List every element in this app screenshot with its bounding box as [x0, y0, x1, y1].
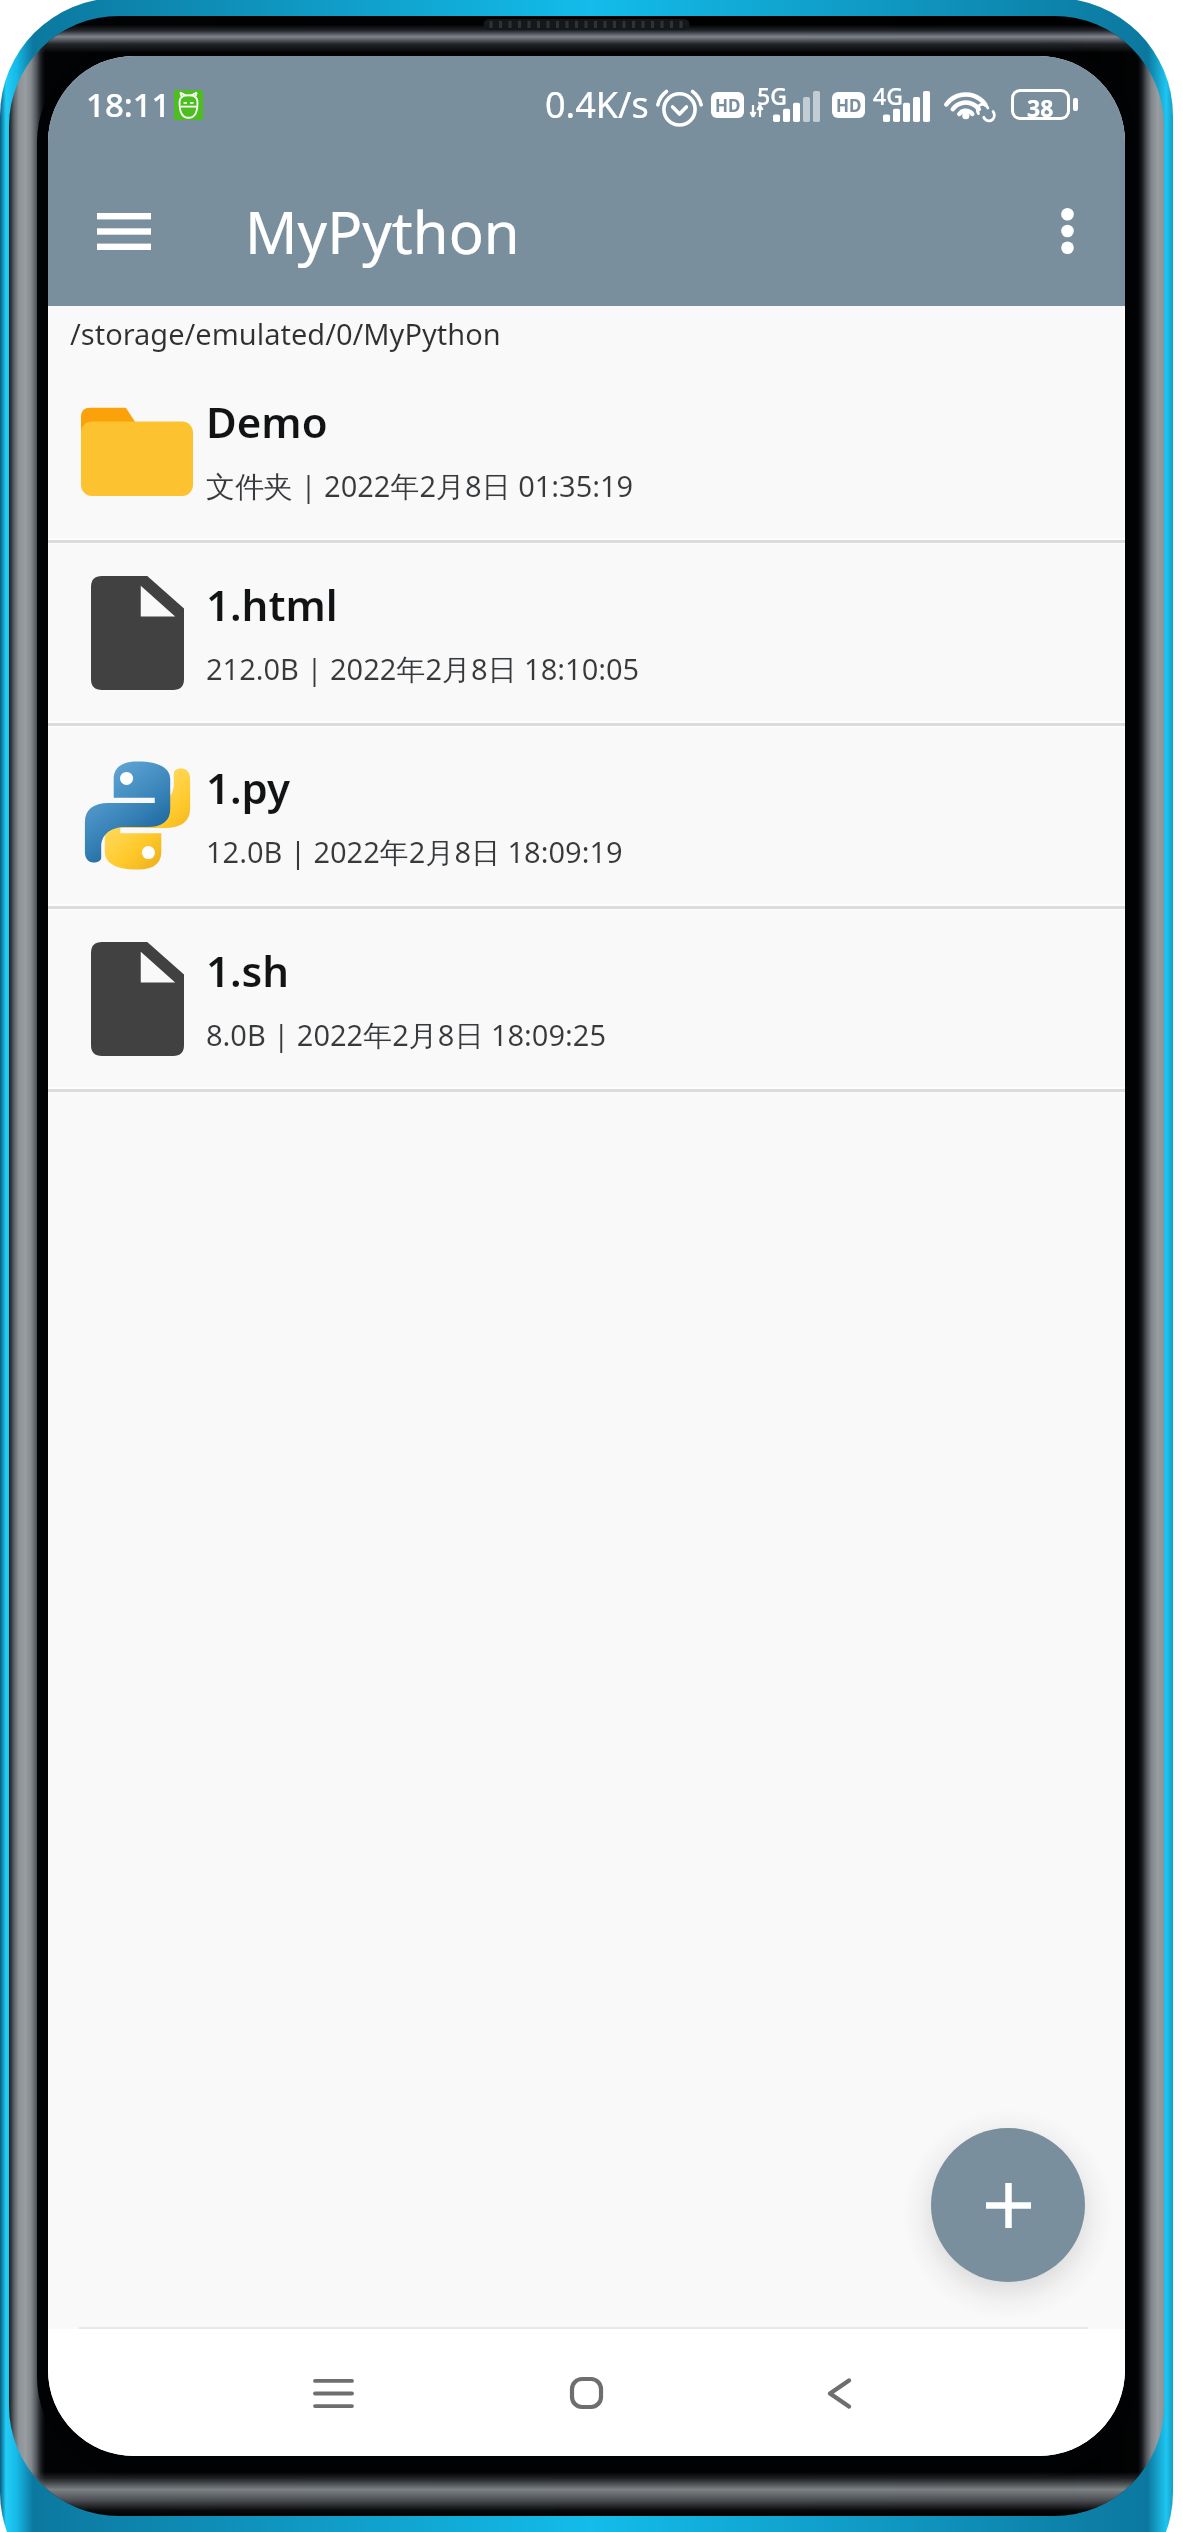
staticText: 1.sh: [206, 942, 290, 999]
button[interactable]: More options: [1013, 177, 1121, 285]
staticText: 212.0B | 2022年2月8日 18:10:05: [206, 649, 640, 689]
button[interactable]: Add: [931, 2128, 1085, 2282]
staticText: 文件夹 | 2022年2月8日 01:35:19: [206, 466, 634, 506]
staticText: 4G: [873, 80, 903, 111]
staticText: 1.py: [206, 759, 291, 816]
staticText: Demo: [206, 393, 328, 450]
button[interactable]: Back: [779, 2333, 899, 2453]
staticText: 18:11: [86, 82, 171, 127]
button[interactable]: Recent apps: [273, 2333, 393, 2453]
button[interactable]: 1.html: [48, 544, 1125, 721]
staticText: MyPython: [245, 192, 520, 271]
staticText: HD: [836, 94, 862, 117]
button[interactable]: Demo: [48, 361, 1125, 538]
staticText: 8.0B | 2022年2月8日 18:09:25: [206, 1015, 606, 1055]
button[interactable]: Open navigation menu: [70, 177, 178, 285]
staticText: 1.html: [206, 576, 338, 633]
staticText: 38: [1027, 92, 1054, 117]
button[interactable]: Home: [526, 2333, 646, 2453]
button[interactable]: 1.sh: [48, 910, 1125, 1087]
staticText: HD: [715, 94, 741, 117]
staticText: 0.4K/s: [545, 80, 649, 129]
staticText: 12.0B | 2022年2月8日 18:09:19: [206, 832, 623, 872]
staticText: /storage/emulated/0/MyPython: [70, 314, 501, 353]
button[interactable]: 1.py: [48, 727, 1125, 904]
staticText: 5G: [757, 80, 787, 111]
